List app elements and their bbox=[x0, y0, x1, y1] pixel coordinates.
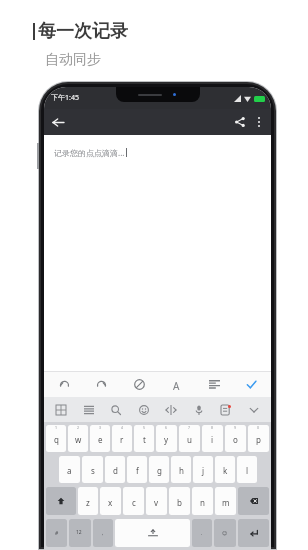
staticText: a bbox=[67, 465, 72, 476]
button[interactable]: 7 bbox=[179, 425, 200, 452]
staticText: , bbox=[102, 530, 104, 537]
staticText: 1 bbox=[55, 425, 58, 430]
staticText: b bbox=[177, 497, 182, 508]
button[interactable]: v bbox=[146, 487, 167, 515]
staticText: 123 bbox=[76, 529, 84, 537]
button[interactable]: k bbox=[215, 456, 235, 483]
button[interactable]: 6 bbox=[156, 425, 177, 452]
staticText: z bbox=[86, 497, 90, 508]
button[interactable]: b bbox=[169, 487, 190, 515]
staticText: p bbox=[256, 434, 261, 445]
button[interactable]: z bbox=[78, 487, 98, 515]
button[interactable]: Font bbox=[164, 372, 188, 396]
staticText: x bbox=[108, 497, 113, 508]
staticText: 7 bbox=[188, 425, 191, 430]
staticText: 9 bbox=[234, 425, 237, 430]
staticText: g bbox=[157, 465, 162, 476]
button[interactable]: More options bbox=[250, 113, 268, 131]
button[interactable]: 1 bbox=[46, 425, 66, 452]
staticText: l bbox=[246, 465, 249, 476]
button[interactable]: 3 bbox=[90, 425, 110, 452]
staticText: A bbox=[173, 379, 180, 390]
button[interactable]: Emoji keyboard bbox=[214, 519, 236, 547]
button[interactable]: Back bbox=[48, 112, 68, 132]
button[interactable]: Backspace bbox=[238, 487, 269, 515]
button[interactable]: 2 bbox=[68, 425, 88, 452]
staticText: k bbox=[223, 465, 228, 476]
staticText: j bbox=[202, 465, 205, 476]
staticText: i bbox=[211, 434, 214, 445]
button[interactable]: Keyboard layout bbox=[50, 399, 72, 421]
staticText: 0 bbox=[257, 425, 260, 430]
button[interactable]: x bbox=[100, 487, 121, 515]
button[interactable]: d bbox=[105, 456, 125, 483]
staticText: v bbox=[154, 497, 159, 508]
button[interactable]: f bbox=[127, 456, 147, 483]
button[interactable]: Enter bbox=[238, 519, 269, 547]
staticText: 每一次记录 bbox=[38, 20, 128, 43]
button[interactable]: Undo bbox=[52, 372, 76, 396]
staticText: m bbox=[222, 497, 230, 508]
button[interactable]: 0 bbox=[248, 425, 269, 452]
button[interactable]: n bbox=[192, 487, 213, 515]
staticText: . bbox=[201, 530, 203, 537]
staticText: w bbox=[75, 434, 82, 445]
button[interactable]: m bbox=[215, 487, 236, 515]
button[interactable]: Numbers bbox=[69, 519, 91, 547]
button[interactable]: Clipboard list bbox=[78, 399, 100, 421]
button[interactable]: 记录您的点点滴滴... bbox=[44, 135, 271, 371]
staticText: u bbox=[187, 434, 192, 445]
staticText: 5 bbox=[143, 425, 146, 430]
button[interactable]: l bbox=[237, 456, 257, 483]
button[interactable]: Share bbox=[230, 112, 250, 132]
staticText: 4 bbox=[121, 425, 124, 430]
staticText: q bbox=[54, 434, 59, 445]
button[interactable]: Done bbox=[239, 372, 263, 396]
button[interactable]: 5 bbox=[134, 425, 154, 452]
button[interactable]: s bbox=[82, 456, 103, 483]
staticText: ☺ bbox=[222, 530, 228, 536]
staticText: 记录您的点点滴滴... bbox=[54, 147, 125, 158]
button[interactable]: a bbox=[59, 456, 80, 483]
button[interactable]: 4 bbox=[112, 425, 132, 452]
button[interactable]: g bbox=[149, 456, 169, 483]
button[interactable]: Translate bbox=[160, 399, 182, 421]
button[interactable]: Voice input bbox=[188, 399, 210, 421]
staticText: 下午1:45 bbox=[51, 93, 79, 103]
button[interactable]: Emoji bbox=[133, 399, 155, 421]
button[interactable]: c bbox=[123, 487, 144, 515]
staticText: s bbox=[91, 465, 95, 476]
button[interactable]: Align bbox=[202, 372, 226, 396]
button[interactable]: Search bbox=[105, 399, 127, 421]
button[interactable]: h bbox=[171, 456, 191, 483]
staticText: # bbox=[55, 530, 59, 537]
staticText: e bbox=[98, 434, 103, 445]
staticText: r bbox=[120, 434, 124, 445]
button[interactable]: Symbols bbox=[46, 519, 67, 547]
staticText: 自动同步 bbox=[45, 51, 101, 69]
staticText: d bbox=[113, 465, 118, 476]
button[interactable]: Space bbox=[115, 519, 190, 547]
staticText: o bbox=[233, 434, 238, 445]
button[interactable]: Redo bbox=[89, 372, 113, 396]
staticText: h bbox=[179, 465, 184, 476]
staticText: 6 bbox=[165, 425, 168, 430]
button[interactable]: 9 bbox=[225, 425, 246, 452]
staticText: 8 bbox=[211, 425, 214, 430]
button[interactable]: 8 bbox=[202, 425, 223, 452]
staticText: n bbox=[200, 497, 205, 508]
staticText: f bbox=[136, 465, 139, 476]
button[interactable]: j bbox=[193, 456, 213, 483]
button[interactable]: Collapse bbox=[243, 399, 265, 421]
button[interactable]: Settings bbox=[215, 399, 237, 421]
staticText: y bbox=[164, 434, 169, 445]
staticText: c bbox=[132, 497, 136, 508]
staticText: 2 bbox=[77, 425, 80, 430]
button[interactable]: Shift bbox=[46, 487, 76, 515]
button[interactable]: Color bbox=[127, 372, 151, 396]
staticText: t bbox=[143, 434, 146, 445]
staticText: 3 bbox=[99, 425, 102, 430]
